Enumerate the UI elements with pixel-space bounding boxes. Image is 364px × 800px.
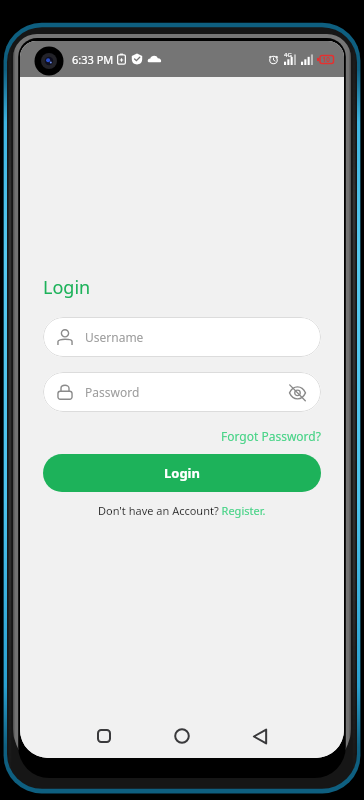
staticText: 10: [322, 55, 331, 64]
button[interactable]: Forgot Password?: [221, 428, 321, 444]
staticText: Login: [164, 464, 200, 482]
staticText: 6:33 PM: [72, 52, 114, 67]
button[interactable]: Username: [43, 317, 321, 357]
staticText: Login: [43, 275, 91, 300]
button[interactable]: Home: [162, 718, 202, 754]
staticText: Username: [85, 329, 144, 345]
button[interactable]: Password: [43, 372, 321, 412]
button[interactable]: Show password: [287, 382, 307, 402]
button[interactable]: Back: [240, 718, 280, 754]
staticText: 4G: [284, 51, 292, 59]
staticText: Forgot Password?: [221, 428, 321, 444]
staticText: Password: [85, 384, 140, 400]
button[interactable]: Recents: [84, 718, 124, 754]
button[interactable]: Don't have an Account? Register.: [98, 503, 266, 518]
button[interactable]: Login: [43, 454, 321, 492]
